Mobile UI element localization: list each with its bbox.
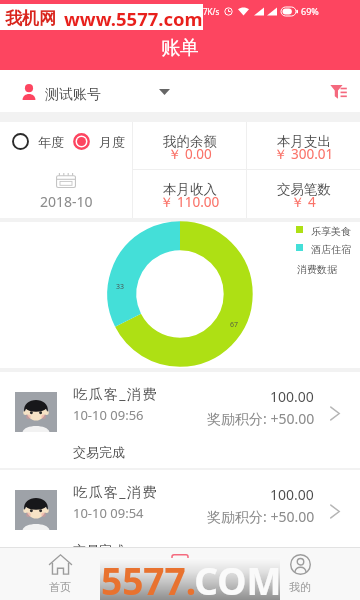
- button[interactable]: Filter: [316, 70, 360, 112]
- staticText: 我机网: [5, 8, 56, 29]
- staticText: 年度: [38, 134, 64, 150]
- staticText: 吃瓜客_消费: [73, 482, 158, 501]
- button[interactable]: 吃瓜客_消费: [0, 372, 360, 468]
- button[interactable]: 交易笔数: [247, 170, 360, 218]
- staticText: ￥ 110.00: [160, 193, 220, 211]
- button[interactable]: 账单: [120, 548, 240, 600]
- staticText: 我的余额: [163, 133, 217, 150]
- staticText: 月度: [99, 134, 125, 150]
- staticText: 交易笔数: [277, 181, 331, 198]
- button[interactable]: [12, 133, 29, 150]
- staticText: 5577.COM: [101, 555, 282, 600]
- staticText: 33: [116, 282, 125, 292]
- staticText: 7K/s: [203, 6, 220, 17]
- button[interactable]: 我的余额: [133, 122, 246, 169]
- staticText: 10-10 09:54: [73, 504, 144, 522]
- staticText: www.5577.com: [64, 6, 203, 31]
- staticText: 账单: [169, 580, 191, 594]
- button[interactable]: 本月收入: [133, 170, 246, 218]
- button[interactable]: [73, 133, 90, 150]
- staticText: 奖励积分: +50.00: [207, 409, 315, 428]
- button[interactable]: 测试账号: [0, 70, 360, 112]
- staticText: 奖励积分: +50.00: [207, 507, 315, 526]
- staticText: 69%: [301, 5, 319, 17]
- button[interactable]: 我的: [240, 548, 360, 600]
- staticText: 本月支出: [277, 133, 331, 150]
- staticText: 账单: [161, 36, 199, 60]
- staticText: 酒店住宿: [311, 243, 351, 256]
- staticText: 10-10 09:56: [73, 406, 144, 424]
- button[interactable]: 吃瓜客_消费: [0, 470, 360, 547]
- staticText: 吃瓜客_消费: [73, 384, 158, 403]
- staticText: 乐享美食: [311, 225, 351, 238]
- staticText: 100.00: [270, 387, 314, 406]
- button[interactable]: 首页: [0, 548, 120, 600]
- staticText: 我的: [289, 580, 311, 594]
- staticText: 本月收入: [163, 181, 217, 198]
- staticText: 测试账号: [45, 86, 101, 104]
- staticText: 消费数据: [297, 263, 337, 276]
- staticText: 首页: [49, 580, 71, 594]
- staticText: ￥ 300.01: [274, 145, 334, 163]
- staticText: 100.00: [270, 485, 314, 504]
- staticText: ￥ 0.00: [168, 145, 212, 163]
- staticText: 67: [230, 320, 239, 330]
- staticText: 交易完成: [73, 444, 125, 460]
- staticText: 2018-10: [40, 192, 93, 211]
- staticText: 交易完成: [73, 542, 125, 558]
- staticText: ￥ 4: [291, 193, 316, 211]
- button[interactable]: 本月支出: [247, 122, 360, 169]
